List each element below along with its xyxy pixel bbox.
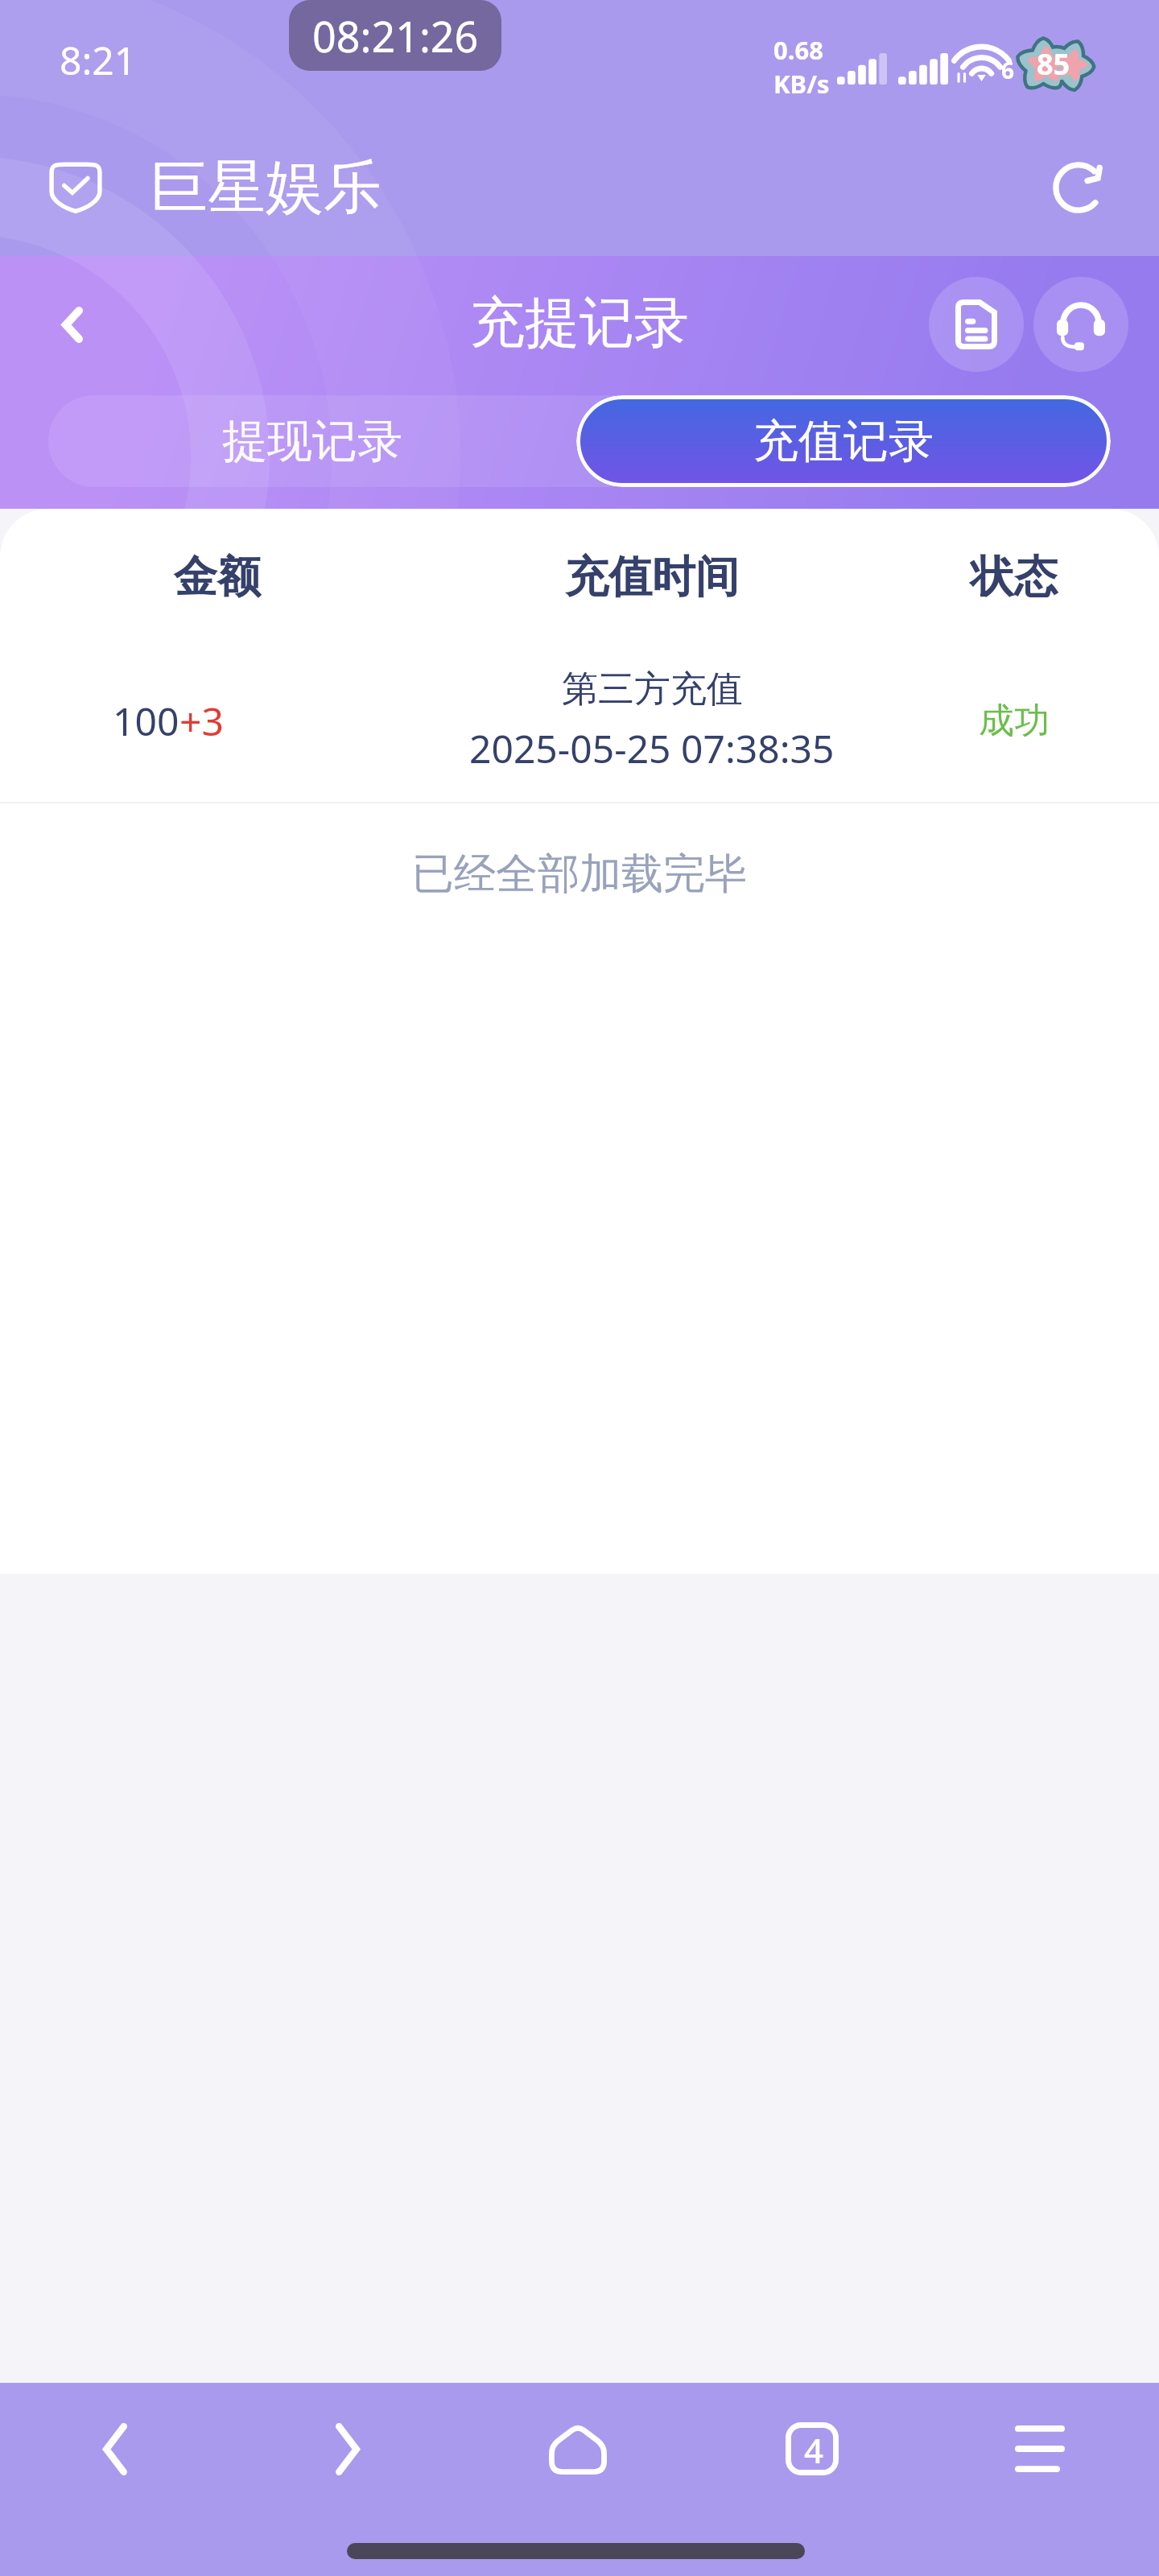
staticText: 100 [113, 695, 179, 747]
staticText: 提现记录 [222, 413, 402, 470]
button[interactable]: Home [520, 2399, 636, 2499]
button[interactable]: 提现记录 [48, 395, 576, 487]
button[interactable]: Back [57, 2399, 173, 2499]
button[interactable]: Tabs, 4 open [754, 2399, 870, 2499]
button[interactable]: Forward [290, 2399, 406, 2499]
staticText: 充值时间 [565, 550, 739, 605]
staticText: 金额 [174, 550, 261, 605]
staticText: 08:21:26 [312, 7, 479, 64]
staticText: KB/s [773, 67, 830, 101]
staticText: 充值记录 [753, 413, 934, 470]
button[interactable]: Menu [982, 2399, 1098, 2499]
staticText: 0.68 [773, 33, 823, 67]
button[interactable]: 充值记录 [576, 395, 1111, 487]
staticText: 6 [1001, 55, 1015, 85]
staticText: 充提记录 [470, 289, 689, 358]
button[interactable]: Site security info [37, 149, 114, 226]
staticText: 第三方充值 [562, 667, 743, 712]
button[interactable]: Statement [929, 277, 1024, 372]
button[interactable]: Customer service [1033, 277, 1128, 372]
staticText: +3 [179, 695, 224, 747]
staticText: 2025-05-25 07:38:35 [469, 722, 835, 774]
staticText: 已经全部加载完毕 [412, 848, 747, 901]
staticText: 4 [804, 2427, 824, 2473]
staticText: 成功 [979, 699, 1050, 743]
button[interactable]: 100 [0, 624, 1159, 817]
staticText: 8:21 [60, 34, 137, 86]
button[interactable]: Back [34, 286, 111, 363]
staticText: 巨星娱乐 [150, 151, 382, 225]
staticText: 85 [1037, 44, 1070, 84]
button[interactable]: Refresh page [1030, 139, 1127, 236]
staticText: 状态 [971, 550, 1058, 605]
